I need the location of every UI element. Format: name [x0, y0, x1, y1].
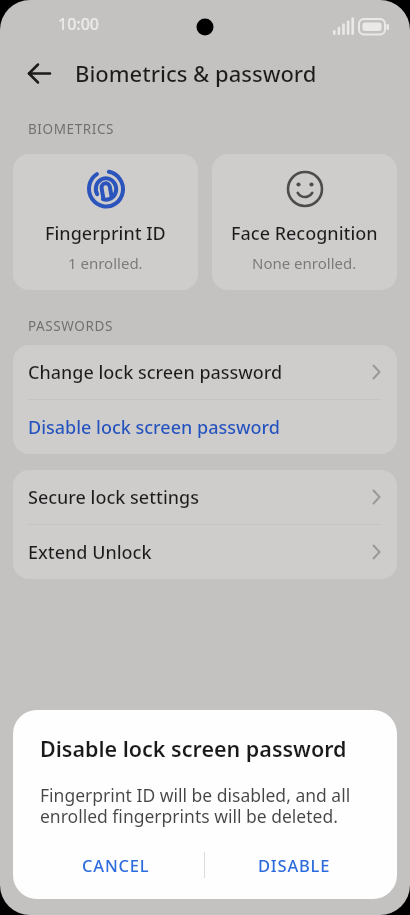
button[interactable]: CANCEL	[27, 839, 204, 891]
staticText: PASSWORDS	[28, 317, 113, 335]
staticText: Fingerprint ID will be disabled, and all…	[40, 783, 351, 828]
staticText: Extend Unlock	[28, 540, 152, 565]
button[interactable]: Fingerprint ID	[13, 154, 198, 290]
staticText: Biometrics & password	[75, 58, 317, 88]
staticText: Face Recognition	[231, 221, 378, 246]
staticText: Fingerprint ID	[45, 221, 166, 246]
button[interactable]	[27, 61, 52, 86]
staticText: Secure lock settings	[28, 485, 199, 510]
staticText: Change lock screen password	[28, 360, 283, 385]
button[interactable]: Change lock screen password	[13, 345, 397, 399]
staticText: BIOMETRICS	[28, 120, 115, 138]
staticText: 10:00	[58, 13, 99, 35]
button[interactable]: DISABLE	[205, 839, 383, 891]
staticText: CANCEL	[82, 854, 150, 876]
staticText: 1 enrolled.	[68, 253, 143, 273]
button[interactable]: Secure lock settings	[13, 470, 397, 524]
staticText: None enrolled.	[252, 253, 357, 273]
staticText: Disable lock screen password	[40, 734, 347, 763]
staticText: Disable lock screen password	[28, 415, 280, 440]
button[interactable]: Disable lock screen password	[13, 400, 397, 454]
button[interactable]: Face Recognition	[212, 154, 397, 290]
staticText: DISABLE	[258, 854, 331, 876]
button[interactable]: Extend Unlock	[13, 525, 397, 579]
